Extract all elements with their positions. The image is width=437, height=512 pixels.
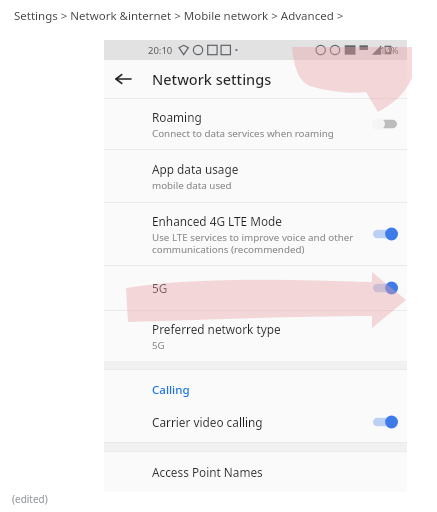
button[interactable]: Carrier video calling bbox=[104, 402, 407, 442]
staticText: Access Point Names bbox=[152, 464, 263, 480]
button[interactable]: 5G bbox=[104, 266, 407, 310]
button[interactable]: Back bbox=[104, 60, 142, 98]
button[interactable]: Carrier video calling toggle bbox=[363, 402, 407, 442]
button[interactable]: Access Point Names bbox=[104, 452, 407, 492]
staticText: Connect to data services when roaming bbox=[152, 127, 334, 140]
staticText: Use LTE services to improve voice and ot… bbox=[152, 231, 354, 256]
button[interactable]: Enhanced 4G LTE Mode bbox=[104, 203, 407, 265]
button[interactable]: App data usage bbox=[104, 150, 407, 202]
staticText: Roaming bbox=[152, 109, 202, 125]
button[interactable]: 5G toggle bbox=[363, 266, 407, 310]
staticText: Preferred network type bbox=[152, 321, 281, 337]
staticText: Carrier video calling bbox=[152, 414, 263, 430]
staticText: 20:10 bbox=[148, 44, 173, 57]
staticText: 5G bbox=[152, 280, 168, 296]
staticText: 5G bbox=[152, 339, 165, 352]
staticText: Enhanced 4G LTE Mode bbox=[152, 213, 282, 229]
staticText: Settings > Network &internet > Mobile ne… bbox=[14, 8, 344, 24]
button[interactable]: Roaming bbox=[104, 99, 407, 149]
button[interactable]: Roaming toggle bbox=[363, 99, 407, 149]
button[interactable]: Preferred network type bbox=[104, 311, 407, 361]
staticText: 14% bbox=[380, 44, 399, 57]
staticText: Calling bbox=[152, 382, 190, 398]
staticText: App data usage bbox=[152, 161, 239, 177]
button[interactable]: Enhanced 4G LTE Mode toggle bbox=[363, 203, 407, 265]
staticText: Network settings bbox=[152, 69, 272, 89]
staticText: mobile data used bbox=[152, 179, 232, 192]
staticText: (edited) bbox=[12, 492, 48, 506]
